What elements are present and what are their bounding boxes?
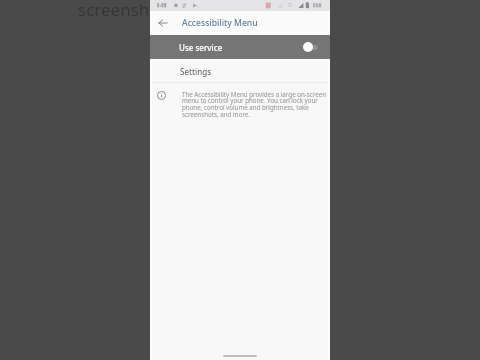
staticText: Accessibility Menu: [182, 17, 258, 29]
button[interactable]: Back: [155, 15, 171, 31]
staticText: screensh: [78, 0, 150, 21]
staticText: The Accessibility Menu provides a large …: [182, 90, 326, 119]
staticText: Settings: [180, 66, 212, 77]
button[interactable]: Use service toggle, off: [303, 42, 318, 52]
staticText: Use service: [179, 42, 223, 53]
button[interactable]: Use service: [150, 35, 330, 59]
button[interactable]: Settings: [150, 59, 330, 82]
